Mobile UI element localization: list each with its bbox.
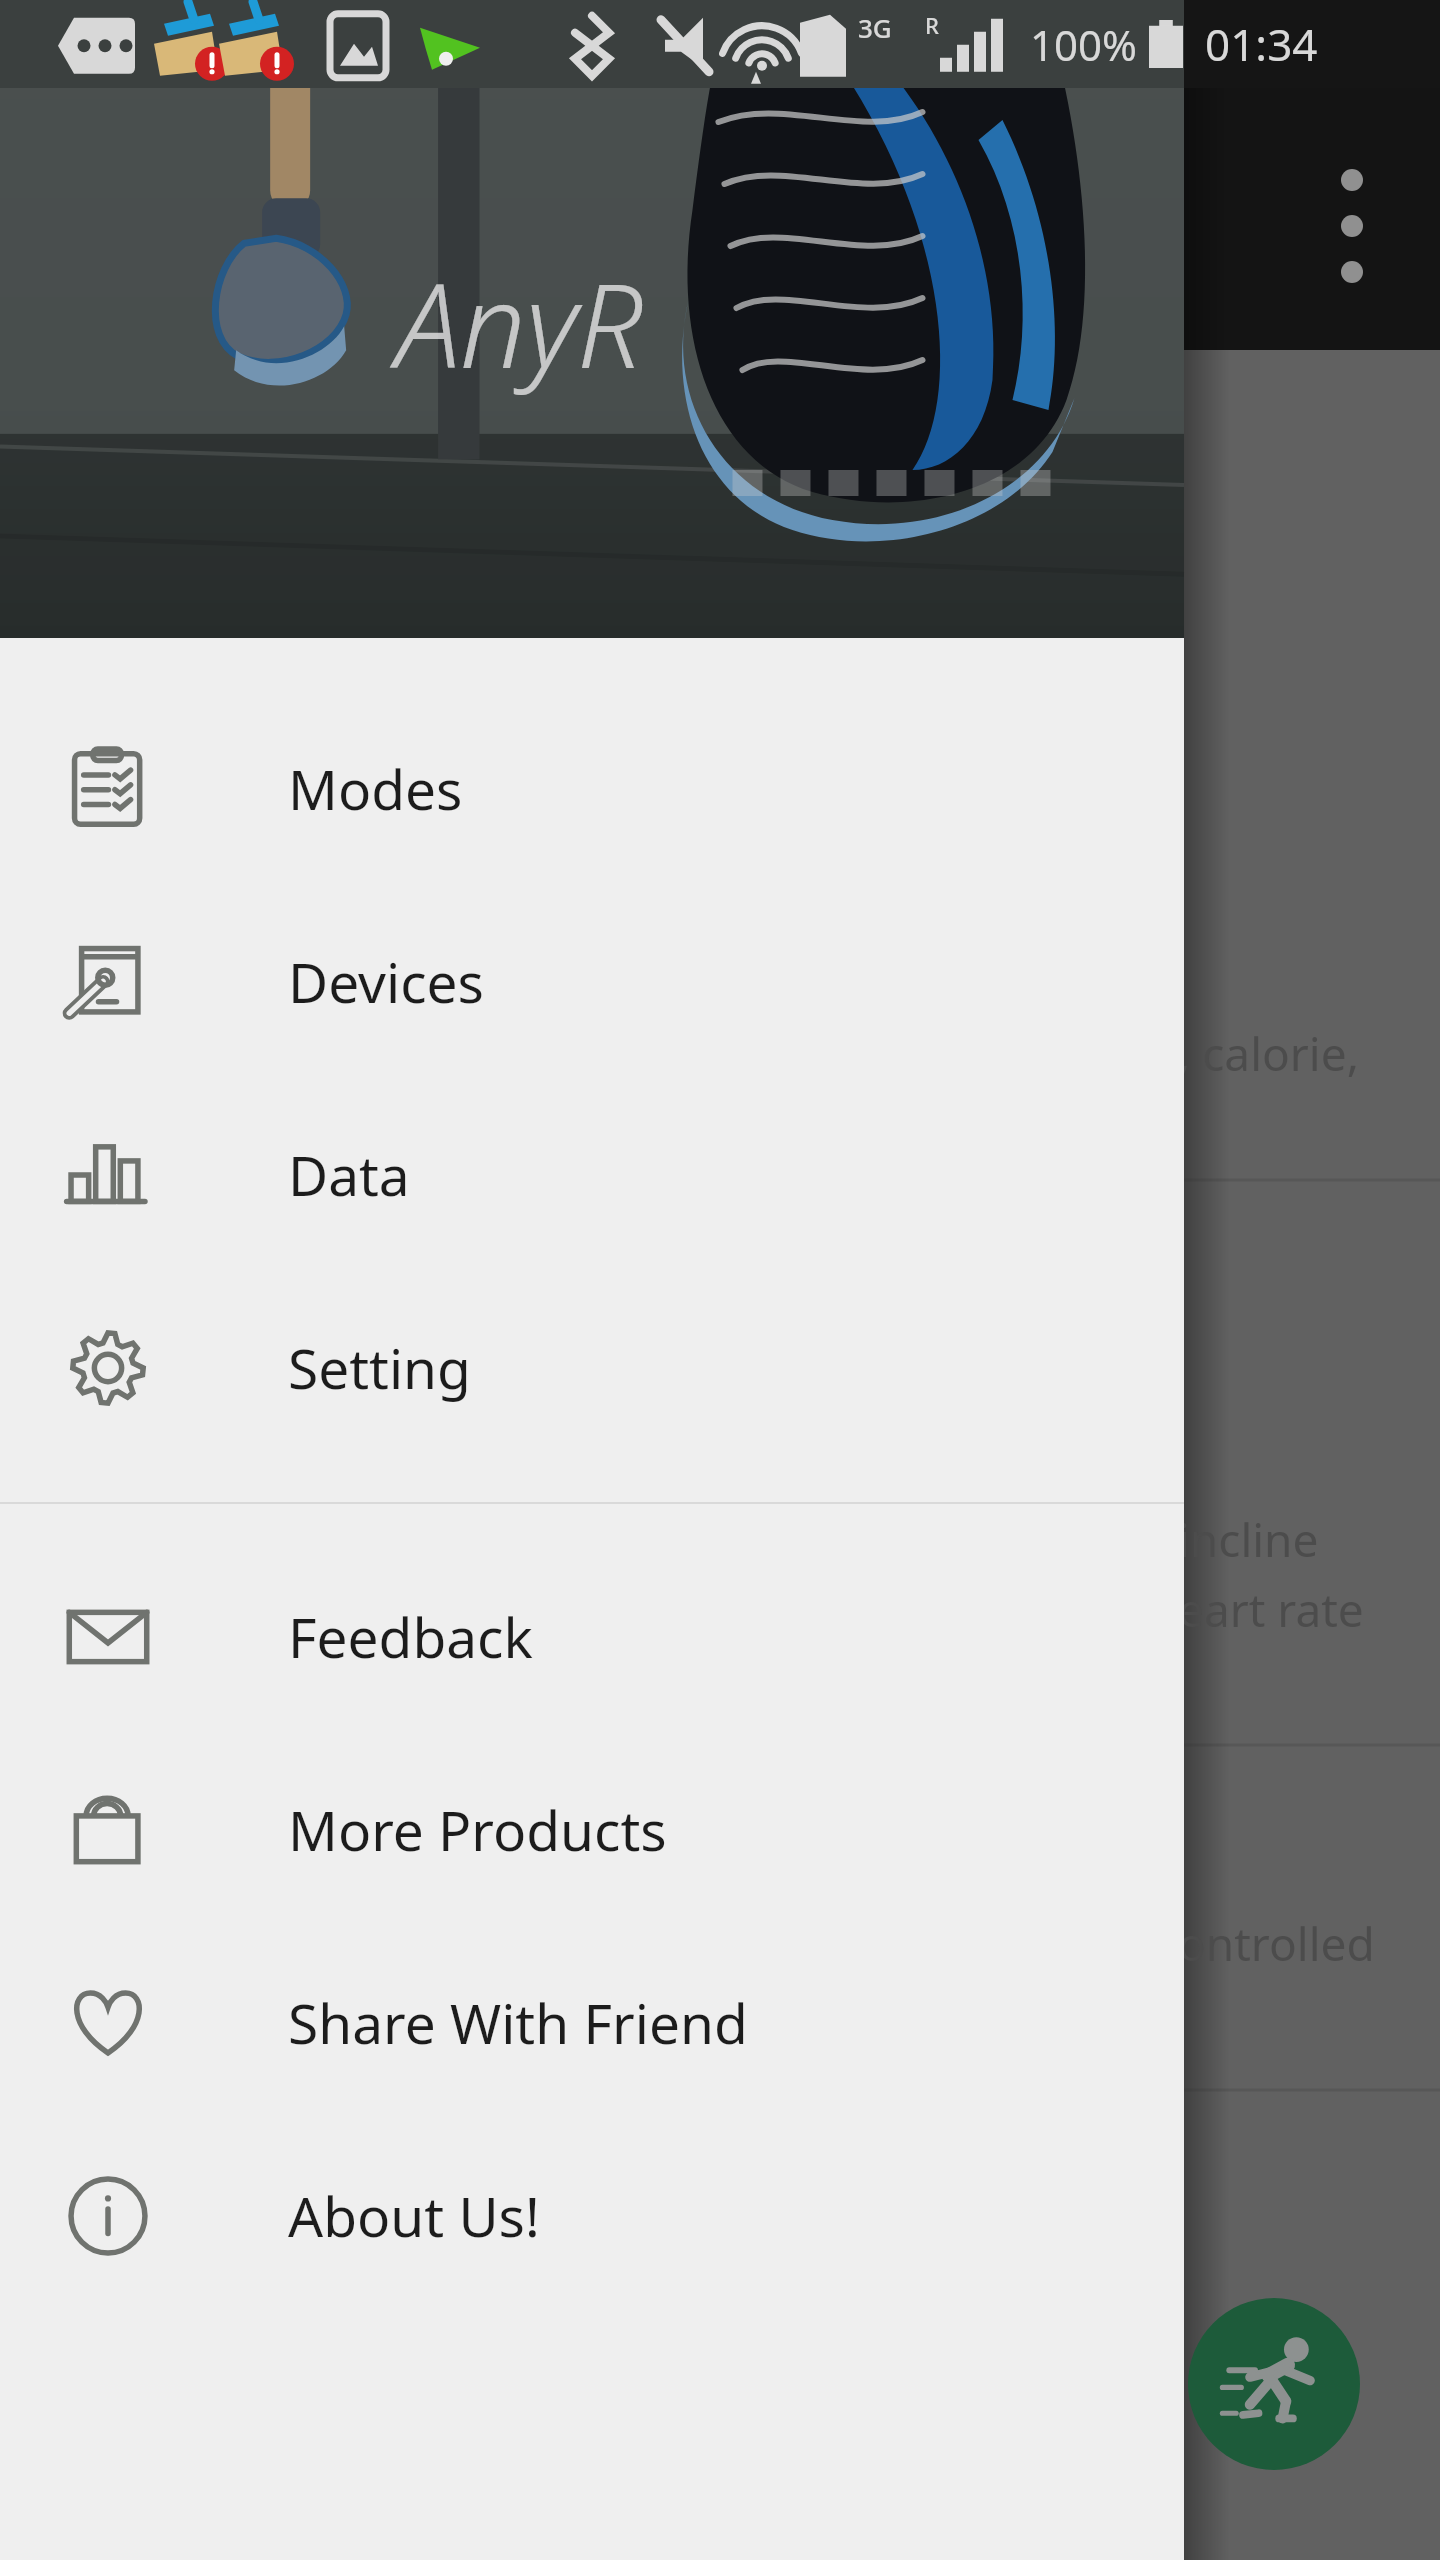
button[interactable]: About Us! — [0, 2119, 1184, 2312]
staticText: Modes — [288, 751, 463, 826]
staticText: 100% — [1030, 16, 1137, 73]
staticText: , calorie, — [1178, 1022, 1360, 1085]
button[interactable]: Share With Friend — [0, 1926, 1184, 2119]
staticText: 01:34 — [1205, 14, 1318, 74]
staticText: AnyR — [396, 244, 643, 402]
button[interactable]: Feedback — [0, 1540, 1184, 1733]
staticText: 3G — [858, 10, 892, 45]
staticText: More Products — [288, 1792, 667, 1867]
button[interactable]: More Products — [0, 1733, 1184, 1926]
staticText: Feedback — [288, 1599, 533, 1674]
button[interactable]: Devices — [0, 885, 1184, 1078]
staticText: About Us! — [288, 2178, 540, 2253]
staticText: Data — [288, 1137, 410, 1212]
staticText: Setting — [288, 1330, 471, 1405]
staticText: ontrolled — [1178, 1912, 1375, 1975]
button[interactable]: Start run — [1188, 2298, 1360, 2470]
staticText: Share With Friend — [288, 1985, 748, 2060]
staticText: R — [925, 10, 939, 40]
button[interactable]: Data — [0, 1078, 1184, 1271]
staticText: incline — [1178, 1508, 1319, 1571]
button[interactable]: Modes — [0, 692, 1184, 885]
button[interactable]: Setting — [0, 1271, 1184, 1464]
staticText: Devices — [288, 944, 484, 1019]
staticText: eart rate — [1178, 1578, 1364, 1641]
